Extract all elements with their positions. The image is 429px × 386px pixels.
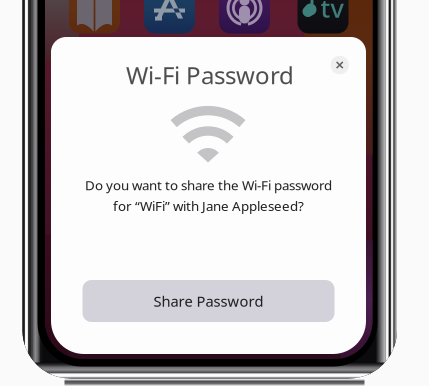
staticText: Wi-Fi Password: [126, 59, 294, 91]
button[interactable]: Close: [326, 51, 354, 79]
staticText: for “WiFi” with Jane Appleseed?: [113, 197, 304, 215]
button[interactable]: Share Password: [82, 280, 334, 322]
staticText: Do you want to share the Wi-Fi password: [85, 176, 332, 194]
staticText: Share Password: [153, 291, 263, 311]
staticText: tv: [320, 0, 343, 25]
